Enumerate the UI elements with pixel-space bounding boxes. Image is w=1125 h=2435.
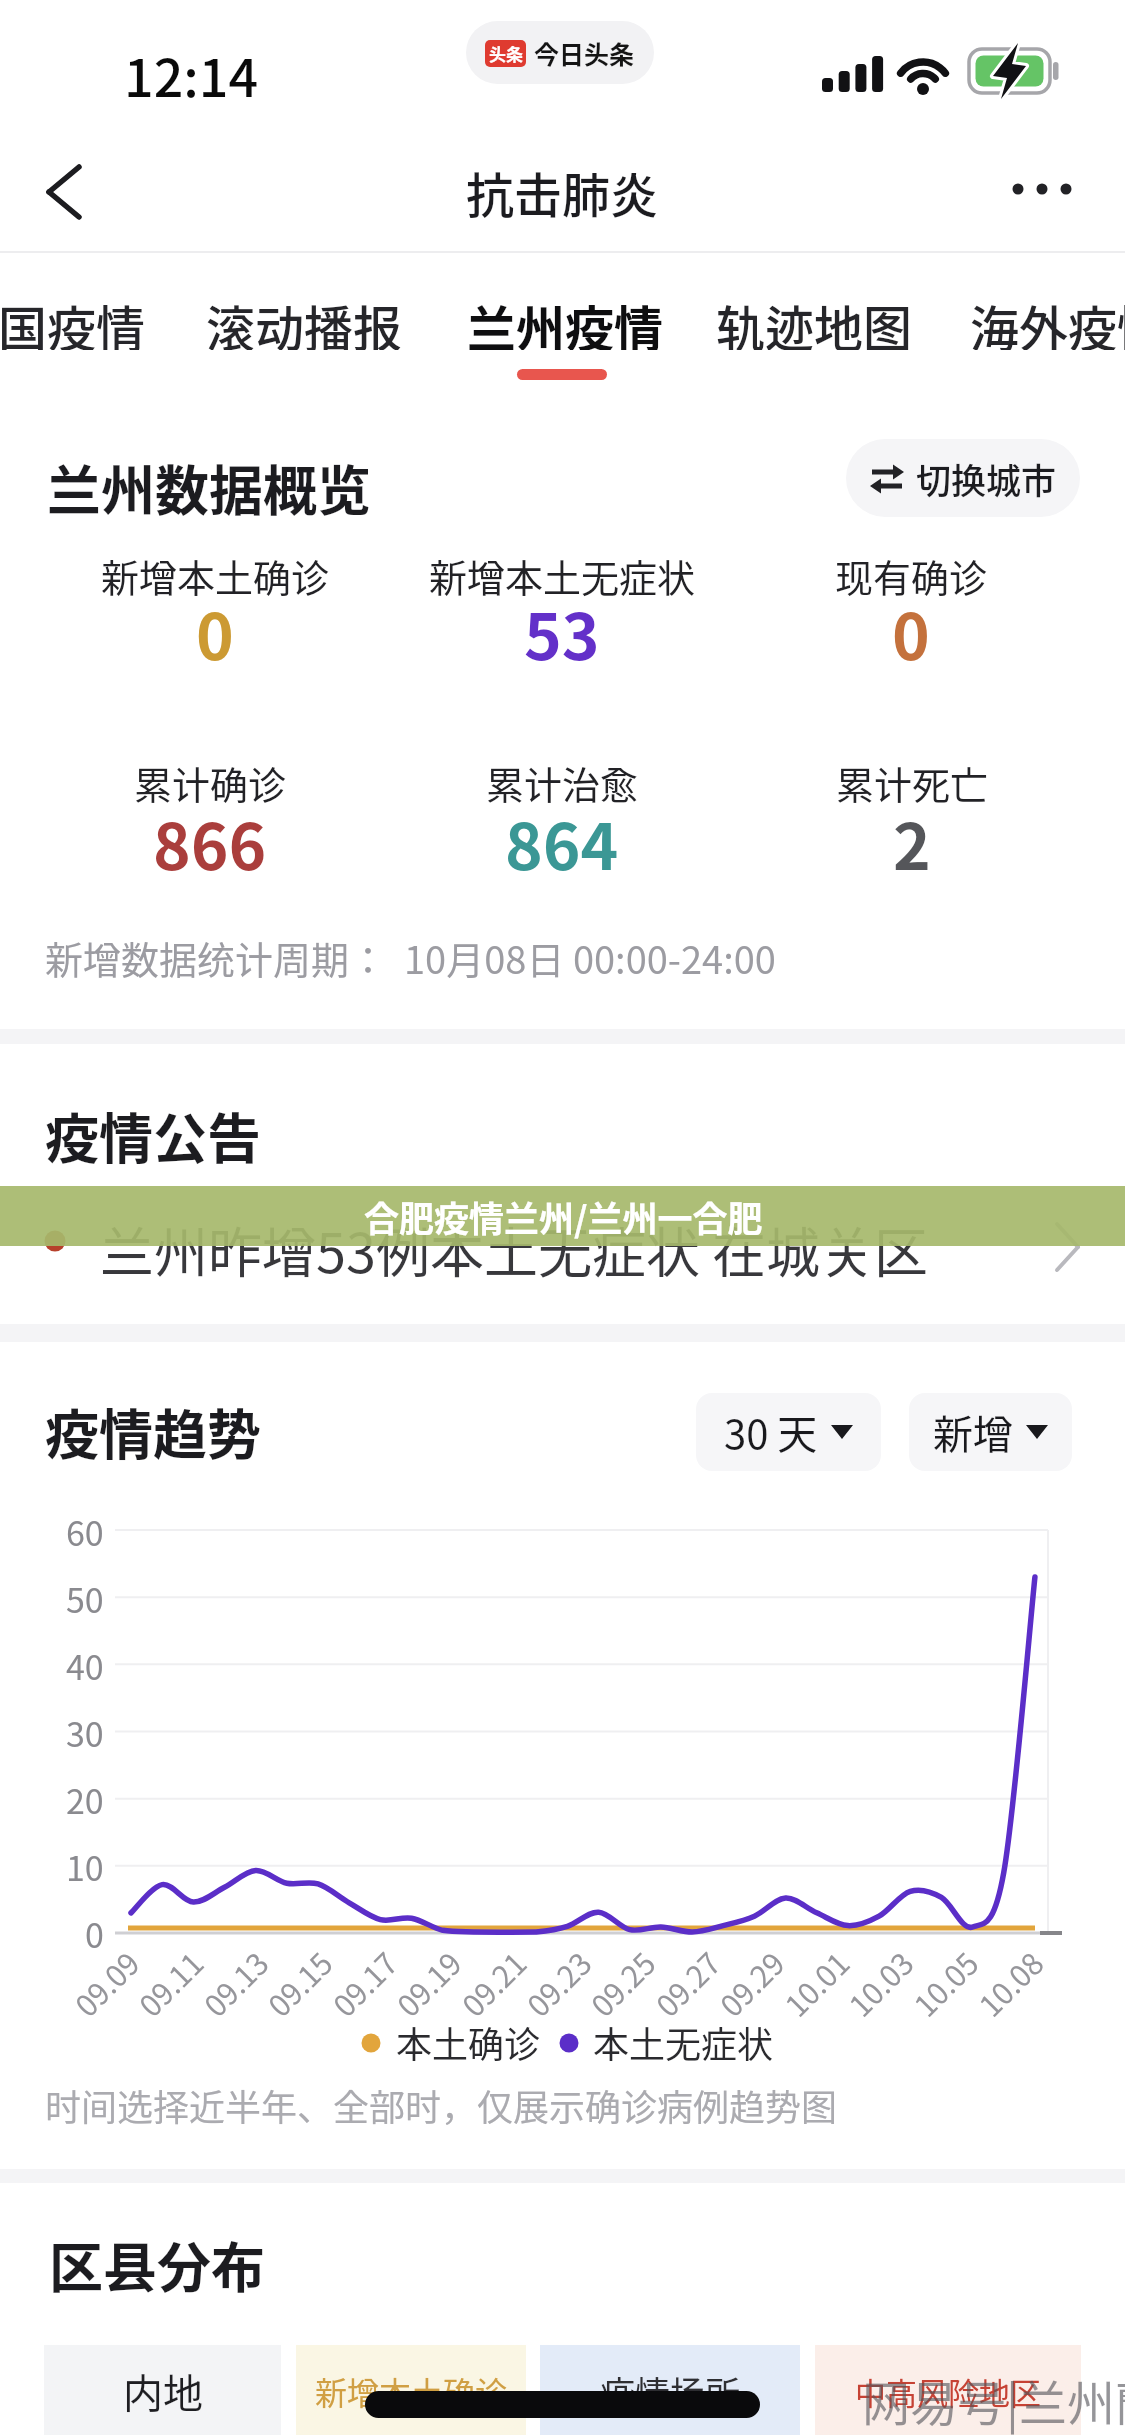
staticText: 30 天	[724, 1403, 818, 1461]
staticText: 10.03	[838, 1941, 921, 2025]
staticText: 09.17	[322, 1941, 405, 2025]
staticText: 疫情趋势	[45, 1392, 261, 1470]
staticText: 50	[66, 1574, 104, 1623]
staticText: 滚动播报	[206, 290, 403, 350]
staticText: 头条	[489, 41, 523, 66]
staticText: 本土确诊	[396, 2016, 541, 2068]
staticText: 新增数据统计周期： 10月08日 00:00-24:00	[45, 930, 776, 985]
staticText: 内地	[123, 2362, 203, 2420]
button[interactable]: 全国疫情	[0, 290, 159, 350]
staticText: 09.19	[386, 1941, 469, 2025]
staticText: 抗击肺炎	[466, 157, 659, 227]
staticText: 10	[66, 1842, 104, 1891]
staticText: 10.01	[774, 1941, 857, 2025]
staticText: 兰州疫情	[467, 290, 664, 350]
staticText: 866	[153, 796, 267, 889]
staticText: 09.09	[64, 1941, 147, 2025]
button[interactable]: 中高风险地区	[815, 2345, 1081, 2435]
staticText: 09.15	[257, 1941, 340, 2025]
staticText: 12:14	[124, 37, 259, 112]
staticText: 0	[85, 1909, 104, 1958]
staticText: 网易号|兰州蘭	[862, 2365, 1125, 2435]
staticText: 40	[66, 1641, 104, 1690]
staticText: 累计死亡	[836, 755, 989, 810]
staticText: 53	[524, 586, 600, 679]
button[interactable]: 切换城市	[846, 439, 1080, 517]
staticText: 09.29	[709, 1941, 792, 2025]
staticText: 合肥疫情兰州/兰州一合肥	[364, 1191, 763, 1242]
staticText: 疫情场所	[600, 2366, 741, 2417]
staticText: 切换城市	[916, 453, 1057, 504]
staticText: 海外疫情	[970, 290, 1125, 350]
staticText: 0	[892, 586, 930, 679]
button[interactable]: 疫情场所	[540, 2345, 800, 2435]
staticText: 中高风险地区	[855, 2369, 1041, 2414]
staticText: 本土无症状	[593, 2016, 774, 2068]
staticText: 新增本土确诊	[101, 548, 330, 603]
staticText: 09.13	[193, 1941, 276, 2025]
staticText: 时间选择近半年、全部时，仅展示确诊病例趋势图	[45, 2079, 838, 2131]
staticText: 09.11	[128, 1941, 211, 2025]
staticText: 10.08	[968, 1941, 1051, 2025]
button[interactable]: 轨迹地图	[716, 290, 916, 350]
staticText: 0	[196, 586, 234, 679]
staticText: 轨迹地图	[716, 290, 913, 350]
staticText: 10.05	[903, 1941, 986, 2025]
staticText: 09.23	[516, 1941, 599, 2025]
button[interactable]: 内地	[44, 2345, 281, 2435]
staticText: 全国疫情	[0, 290, 146, 350]
button[interactable]: 新增本土确诊	[296, 2345, 526, 2435]
button[interactable]: 滚动播报	[206, 290, 406, 350]
staticText: 兰州昨增53例本土无症状 在城关区	[100, 1210, 929, 1288]
staticText: 2	[893, 796, 931, 889]
staticText: 累计确诊	[134, 755, 287, 810]
staticText: 兰州数据概览	[47, 448, 371, 526]
staticText: 现有确诊	[835, 548, 988, 603]
staticText: 09.27	[645, 1941, 728, 2025]
staticText: 新增本土无症状	[429, 548, 696, 603]
button[interactable]: 新增	[909, 1393, 1072, 1471]
staticText: 今日头条	[534, 35, 635, 71]
staticText: 09.25	[580, 1941, 663, 2025]
staticText: 30	[66, 1708, 104, 1757]
button[interactable]: 海外疫情	[970, 290, 1125, 350]
button[interactable]: 兰州疫情	[467, 290, 667, 350]
staticText: 09.21	[451, 1941, 534, 2025]
staticText: 新增本土确诊	[315, 2368, 508, 2414]
button[interactable]	[0, 1200, 1125, 1304]
staticText: 60	[66, 1507, 104, 1556]
staticText: 区县分布	[49, 2225, 265, 2303]
staticText: 20	[66, 1775, 104, 1824]
staticText: 864	[505, 796, 619, 889]
staticText: 疫情公告	[45, 1096, 261, 1174]
staticText: 新增	[933, 1403, 1013, 1461]
button[interactable]: 30 天	[696, 1393, 881, 1471]
staticText: 累计治愈	[486, 755, 639, 810]
